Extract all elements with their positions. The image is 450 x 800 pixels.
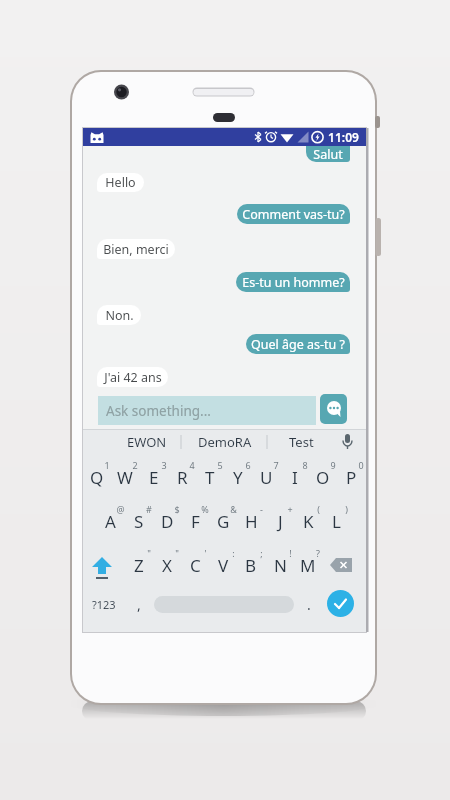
button[interactable]: C [181,549,209,582]
button[interactable]: Z [125,549,153,582]
staticText: L [332,510,341,533]
staticText: " [147,547,151,559]
staticText: Salut [313,146,343,162]
staticText: S [134,510,144,533]
button[interactable]: R [168,461,196,494]
staticText: Z [134,554,144,577]
button[interactable]: K [294,505,322,538]
staticText: I [292,466,298,489]
button[interactable]: ?123 [88,590,120,618]
staticText: Y [233,466,243,489]
staticText: $ [174,503,180,515]
staticText: B [245,554,257,577]
button[interactable] [154,596,294,613]
staticText: A [105,510,116,533]
staticText: U [260,466,273,489]
button[interactable]: E [140,461,168,494]
staticText: . [307,595,311,614]
button[interactable]: M [294,549,322,582]
button[interactable]: Y [224,461,252,494]
staticText: ! [289,547,292,559]
staticText: R [177,466,188,489]
button[interactable]: DemoRA [191,431,259,453]
button[interactable]: EWON [121,431,173,453]
staticText: ) [345,503,348,515]
button[interactable]: Test [277,431,325,453]
staticText: Hello [105,174,136,191]
staticText: EWON [127,433,167,451]
staticText: , [137,595,141,614]
staticText: X [162,554,172,577]
button[interactable]: X [153,549,181,582]
staticText: Bien, merci [103,241,169,258]
button[interactable]: I [281,461,309,494]
button[interactable]: L [322,505,350,538]
staticText: ' [204,547,207,559]
staticText: D [161,510,174,533]
staticText: M [300,554,316,577]
staticText: Non. [105,307,134,324]
staticText: " [175,547,179,559]
button[interactable]: T [196,461,224,494]
staticText: 5 [217,459,223,471]
staticText: Test [289,433,314,451]
staticText: G [217,510,230,533]
staticText: T [205,466,215,489]
button[interactable]: P [337,461,365,494]
staticText: J'ai 42 ans [104,369,162,386]
staticText: V [218,554,229,577]
staticText: + [287,503,293,515]
button[interactable]: , [127,590,151,618]
staticText: 6 [245,459,251,471]
button[interactable]: W [111,461,139,494]
staticText: P [346,466,357,489]
button[interactable]: V [209,549,237,582]
staticText: 4 [189,459,195,471]
staticText: - [260,503,263,515]
staticText: K [303,510,314,533]
staticText: Es-tu un homme? [242,274,345,291]
staticText: 2 [132,459,138,471]
staticText: ( [317,503,320,515]
staticText: N [274,554,287,577]
staticText: 11:09 [328,129,359,145]
staticText: W [117,466,133,489]
button[interactable]: H [237,505,265,538]
staticText: 0 [358,459,364,471]
button[interactable]: S [125,505,153,538]
button[interactable] [88,551,116,585]
button[interactable]: . [297,590,321,618]
staticText: E [149,466,159,489]
staticText: Ask something... [106,402,211,420]
staticText: 9 [330,459,336,471]
button[interactable]: B [237,549,265,582]
button[interactable]: O [309,461,337,494]
staticText: : [232,547,235,559]
staticText: Quel âge as-tu ? [251,336,345,353]
staticText: @ [116,503,125,515]
staticText: F [191,510,200,533]
button[interactable]: D [153,505,181,538]
button[interactable]: Ask something... [98,396,316,425]
button[interactable]: N [266,549,294,582]
button[interactable] [320,394,347,424]
staticText: ; [260,547,263,559]
button[interactable]: A [96,505,124,538]
button[interactable]: U [252,461,280,494]
staticText: 1 [104,459,110,471]
staticText: # [146,503,152,515]
staticText: & [230,503,237,515]
staticText: J [278,510,283,533]
button[interactable]: F [181,505,209,538]
staticText: ? [316,547,320,559]
staticText: % [201,503,209,515]
button[interactable] [327,590,354,617]
staticText: 8 [302,459,308,471]
button[interactable]: J [266,505,294,538]
staticText: Comment vas-tu? [242,206,345,223]
button[interactable]: G [209,505,237,538]
button[interactable]: Q [83,461,111,494]
staticText: 7 [273,459,279,471]
button[interactable] [327,551,355,579]
staticText: 3 [161,459,167,471]
